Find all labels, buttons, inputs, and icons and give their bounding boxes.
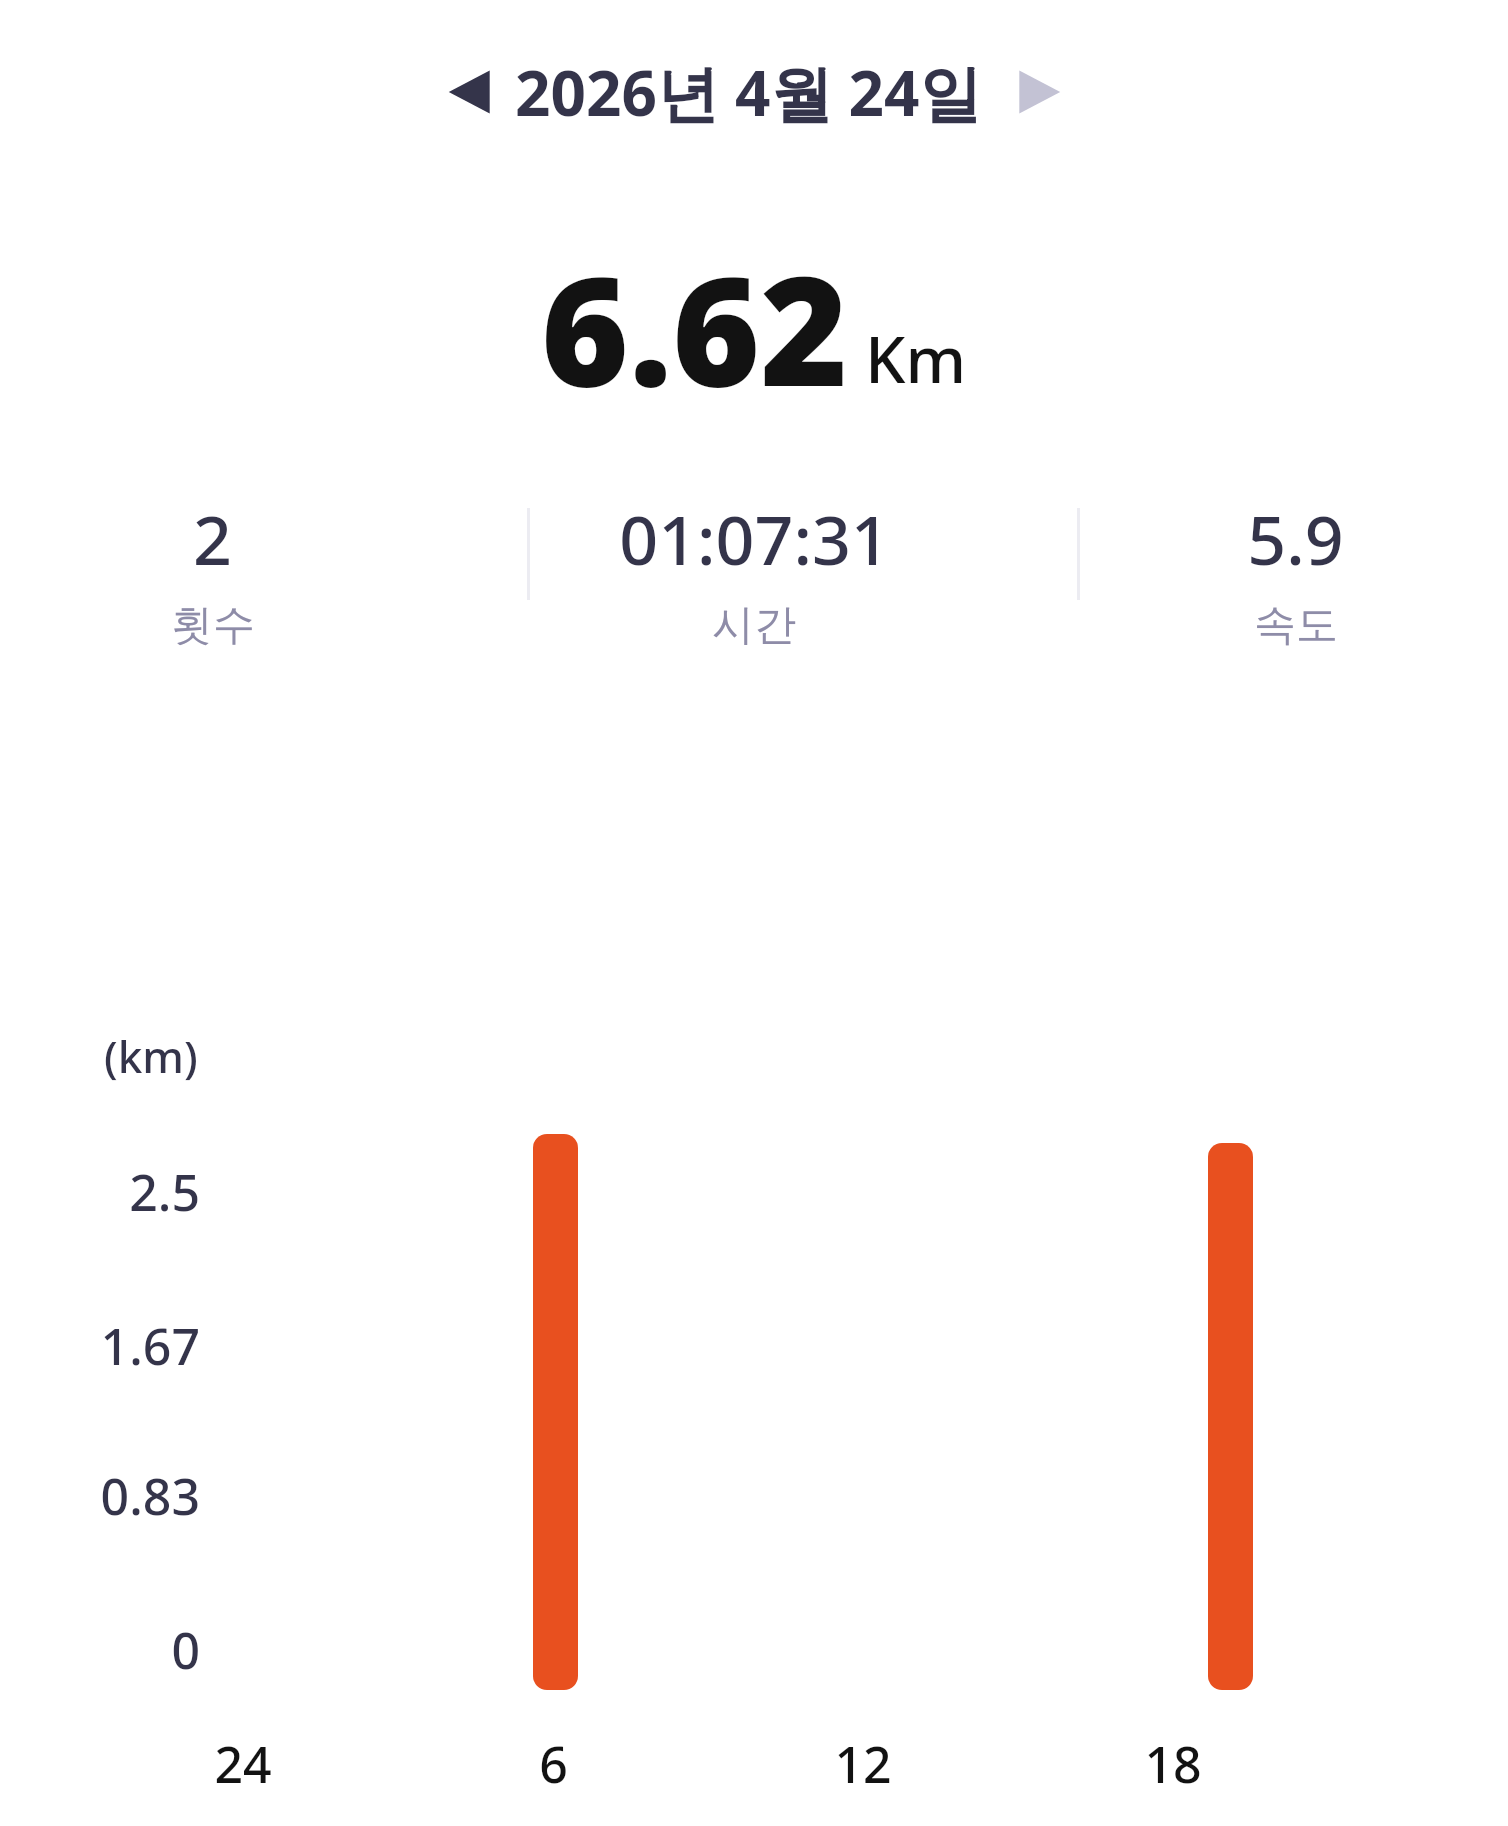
staticText: 속도 bbox=[1254, 599, 1338, 652]
staticText: 5.9 bbox=[1247, 492, 1344, 585]
staticText: 12 bbox=[834, 1730, 892, 1798]
button[interactable]: 이전 날짜 bbox=[431, 54, 507, 130]
staticText: 0.83 bbox=[100, 1462, 200, 1530]
button[interactable]: 01:07:31 bbox=[425, 492, 1083, 652]
button[interactable]: 다음 날짜 bbox=[1002, 54, 1078, 130]
staticText: 0 bbox=[171, 1616, 200, 1684]
staticText: (km) bbox=[104, 1026, 198, 1086]
button[interactable]: 2 bbox=[0, 492, 425, 652]
staticText: 1.67 bbox=[100, 1312, 200, 1380]
staticText: 횟수 bbox=[171, 599, 255, 652]
staticText: 6.62 bbox=[541, 226, 849, 430]
staticText: 18 bbox=[1144, 1730, 1202, 1798]
staticText: 01:07:31 bbox=[619, 492, 890, 585]
staticText: 24 bbox=[214, 1730, 272, 1798]
button[interactable]: 6시 구간 거리 bbox=[533, 1134, 578, 1690]
button[interactable]: 18시 구간 거리 bbox=[1208, 1143, 1253, 1690]
button[interactable]: 5.9 bbox=[1083, 492, 1508, 652]
staticText: 시간 bbox=[712, 599, 796, 652]
staticText: 2 bbox=[193, 492, 232, 585]
staticText: Km bbox=[865, 315, 967, 402]
staticText: 6 bbox=[539, 1730, 568, 1798]
staticText: 2026년 4월 24일 bbox=[515, 50, 982, 135]
staticText: 2.5 bbox=[129, 1158, 200, 1226]
